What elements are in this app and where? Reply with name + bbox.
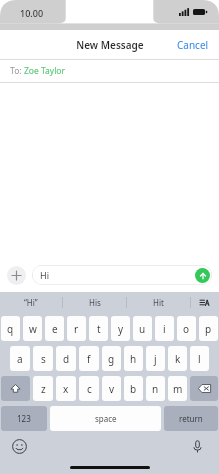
staticText: d (63, 352, 70, 366)
button[interactable]: r (67, 316, 86, 341)
button[interactable]: j (146, 346, 165, 371)
staticText: r (74, 322, 79, 336)
staticText: l (198, 352, 201, 366)
button[interactable]: Hit (127, 292, 190, 313)
staticText: y (118, 322, 124, 336)
button[interactable]: x (56, 376, 76, 401)
staticText: p (205, 322, 212, 336)
button[interactable]: s (33, 346, 53, 371)
button[interactable]: Emoji (12, 439, 27, 454)
button[interactable]: k (168, 346, 187, 371)
button[interactable]: g (102, 346, 121, 371)
staticText: i (163, 322, 166, 336)
button[interactable]: f (79, 346, 99, 371)
staticText: return (179, 413, 203, 424)
button[interactable]: c (79, 376, 99, 401)
button[interactable]: “Hi” (0, 292, 62, 313)
button[interactable]: o (177, 316, 196, 341)
staticText: 10.00 (20, 7, 44, 19)
button[interactable]: Shift (1, 376, 30, 401)
button[interactable]: His (63, 292, 126, 313)
staticText: w (29, 322, 37, 336)
staticText: “Hi” (24, 297, 38, 308)
button[interactable]: q (1, 316, 20, 341)
button[interactable]: v (102, 376, 121, 401)
button[interactable]: h (124, 346, 143, 371)
button[interactable]: l (190, 346, 209, 371)
staticText: g (108, 352, 115, 366)
button[interactable]: z (33, 376, 53, 401)
staticText: h (130, 352, 137, 366)
staticText: Hit (153, 297, 164, 308)
button[interactable]: m (168, 376, 187, 401)
staticText: n (152, 382, 159, 396)
staticText: a (17, 352, 23, 366)
button[interactable]: 123 (1, 406, 47, 431)
button[interactable]: n (146, 376, 165, 401)
staticText: Hi (40, 269, 49, 281)
button[interactable]: return (164, 406, 218, 431)
button[interactable]: a (10, 346, 30, 371)
staticText: f (87, 352, 91, 366)
staticText: m (173, 382, 183, 396)
staticText: o (183, 322, 190, 336)
staticText: Zoe Taylor (24, 65, 66, 77)
staticText: space (95, 413, 117, 424)
button[interactable]: space (50, 406, 161, 431)
button[interactable]: b (124, 376, 143, 401)
button[interactable]: i (155, 316, 174, 341)
button[interactable]: u (133, 316, 152, 341)
button[interactable]: Dictation (190, 439, 205, 454)
button[interactable]: w (23, 316, 42, 341)
button[interactable]: t (89, 316, 108, 341)
button[interactable]: To: (0, 60, 219, 82)
staticText: b (130, 382, 137, 396)
staticText: 123 (17, 413, 31, 424)
staticText: x (63, 382, 69, 396)
staticText: z (41, 382, 46, 396)
staticText: New Message (76, 38, 144, 52)
staticText: To: (10, 65, 24, 77)
button[interactable]: Text formatting (191, 292, 219, 313)
staticText: j (154, 352, 157, 366)
button[interactable]: p (199, 316, 218, 341)
staticText: His (89, 297, 101, 308)
button[interactable]: Hi (32, 265, 212, 285)
button[interactable]: Add attachment (7, 266, 26, 285)
staticText: k (175, 352, 181, 366)
staticText: u (139, 322, 146, 336)
button[interactable]: Backspace (190, 376, 218, 401)
staticText: v (109, 382, 115, 396)
staticText: e (52, 322, 58, 336)
button[interactable]: e (45, 316, 64, 341)
staticText: c (87, 382, 92, 396)
button[interactable]: Cancel (167, 32, 219, 58)
staticText: q (7, 322, 14, 336)
staticText: Cancel (177, 38, 209, 52)
staticText: t (97, 322, 101, 336)
staticText: s (41, 352, 46, 366)
button[interactable]: d (56, 346, 76, 371)
button[interactable]: y (111, 316, 130, 341)
button[interactable]: Send (195, 268, 210, 283)
